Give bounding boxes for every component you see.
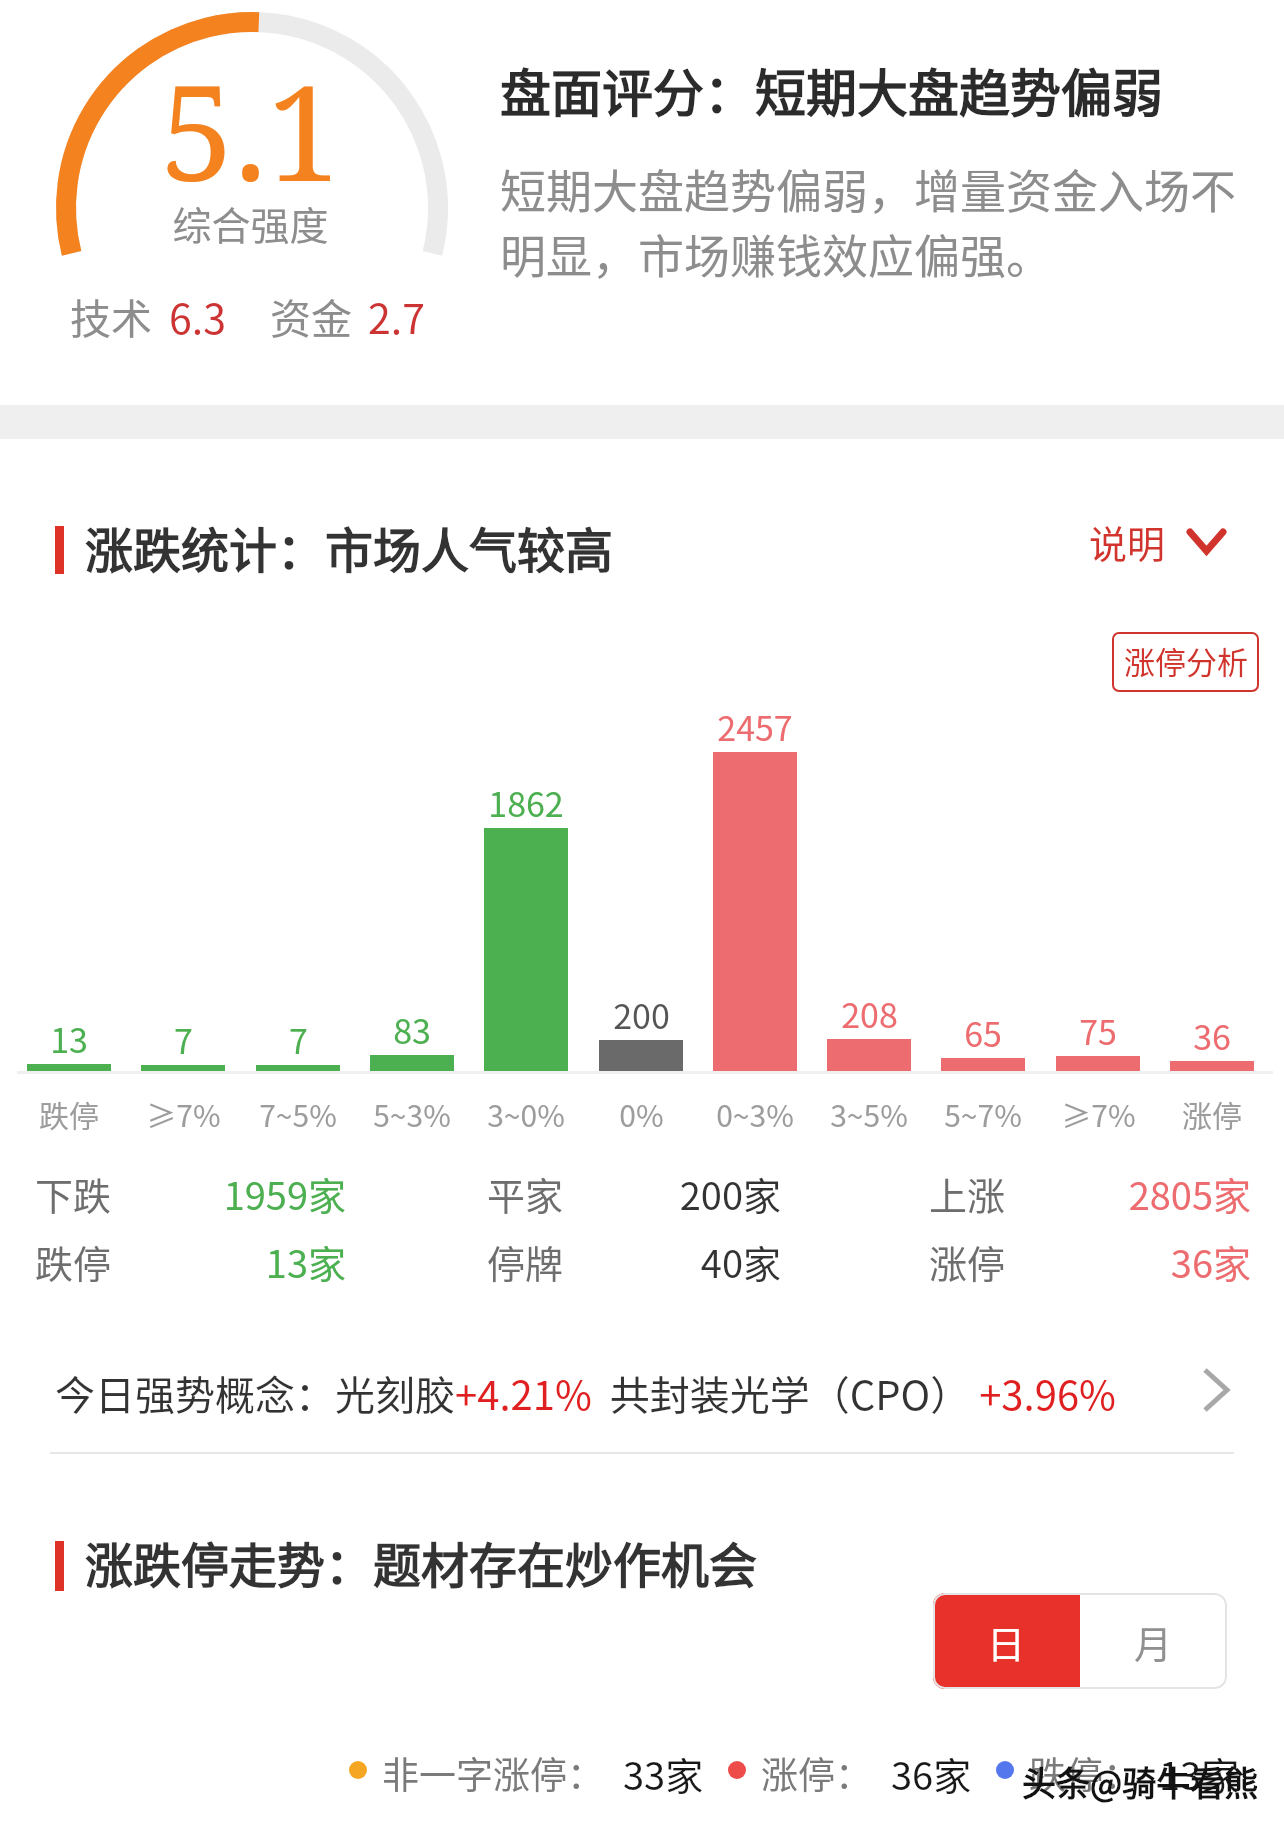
staticText: 13 bbox=[50, 1014, 88, 1063]
staticText: ≥7% bbox=[1061, 1092, 1136, 1135]
staticText: 2.7 bbox=[368, 286, 425, 345]
staticText: 40家 bbox=[700, 1234, 781, 1289]
staticText: 75 bbox=[1079, 1006, 1117, 1055]
staticText: 停牌 bbox=[487, 1234, 564, 1289]
staticText: 0~3% bbox=[716, 1092, 794, 1135]
staticText: 跌停 bbox=[35, 1234, 112, 1289]
staticText: 涨停 bbox=[1182, 1092, 1242, 1135]
staticText: 下跌 bbox=[35, 1166, 112, 1221]
staticText: ≥7% bbox=[146, 1092, 221, 1135]
staticText: 非一字涨停： bbox=[382, 1746, 604, 1794]
staticText: 涨跌统计：市场人气较高 bbox=[85, 512, 614, 582]
staticText: 今日强势概念：光刻胶+4.21% 共封装光学（CPO） +3.96% bbox=[55, 1364, 1116, 1422]
staticText: 65 bbox=[964, 1008, 1002, 1057]
staticText: 33家 bbox=[623, 1746, 704, 1794]
staticText: 涨跌停走势：题材存在炒作机会 bbox=[85, 1527, 758, 1597]
staticText: 涨停： bbox=[761, 1746, 872, 1794]
staticText: 7 bbox=[174, 1015, 193, 1064]
other: 更多 bbox=[1203, 1370, 1229, 1410]
staticText: 7 bbox=[289, 1015, 308, 1064]
staticText: 0% bbox=[619, 1092, 664, 1135]
staticText: 3~0% bbox=[487, 1092, 565, 1135]
staticText: 208 bbox=[841, 989, 898, 1038]
staticText: 跌停： bbox=[1029, 1746, 1140, 1794]
staticText: 200家 bbox=[679, 1166, 781, 1221]
staticText: 涨停 bbox=[929, 1234, 1006, 1289]
button[interactable]: 月 bbox=[1080, 1593, 1227, 1689]
button[interactable]: 涨停分析 bbox=[1112, 632, 1259, 692]
staticText: 上涨 bbox=[929, 1166, 1006, 1221]
staticText: 说明 bbox=[1089, 514, 1166, 569]
staticText: 月 bbox=[1134, 1614, 1173, 1669]
staticText: 涨停分析 bbox=[1124, 638, 1248, 683]
button[interactable]: 今日强势概念：光刻胶+4.21% 共封装光学（CPO） +3.96% bbox=[55, 1355, 1229, 1431]
staticText: 6.3 bbox=[169, 286, 226, 345]
staticText: 83 bbox=[393, 1005, 431, 1054]
staticText: 资金 bbox=[270, 286, 352, 345]
other: 展开说明 bbox=[1190, 532, 1223, 551]
staticText: 跌停 bbox=[39, 1092, 99, 1135]
staticText: 13家 bbox=[265, 1234, 346, 1289]
button[interactable]: 日 bbox=[933, 1593, 1080, 1689]
staticText: 5.1 bbox=[160, 40, 341, 220]
staticText: 13家 bbox=[1159, 1746, 1240, 1794]
staticText: 技术 bbox=[70, 286, 152, 345]
staticText: 36家 bbox=[891, 1746, 972, 1794]
staticText: 7~5% bbox=[259, 1092, 337, 1135]
staticText: 综合强度 bbox=[172, 195, 329, 251]
staticText: 36 bbox=[1193, 1011, 1231, 1060]
staticText: 5~3% bbox=[373, 1092, 451, 1135]
staticText: 平家 bbox=[487, 1166, 564, 1221]
staticText: 日 bbox=[987, 1614, 1026, 1669]
staticText: 3~5% bbox=[830, 1092, 908, 1135]
staticText: 1862 bbox=[488, 778, 564, 827]
staticText: 36家 bbox=[1170, 1234, 1251, 1289]
staticText: 200 bbox=[613, 990, 670, 1039]
staticText: 5~7% bbox=[944, 1092, 1022, 1135]
staticText: 短期大盘趋势偏弱，增量资金入场不明显，市场赚钱效应偏强。 bbox=[500, 155, 1242, 286]
staticText: 2805家 bbox=[1128, 1166, 1251, 1221]
button[interactable]: 说明 bbox=[1089, 511, 1223, 571]
staticText: 头条@骑牛看熊 bbox=[1022, 1757, 1259, 1806]
staticText: 2457 bbox=[717, 702, 793, 751]
staticText: 1959家 bbox=[223, 1166, 346, 1221]
staticText: 盘面评分：短期大盘趋势偏弱 bbox=[500, 53, 1164, 127]
